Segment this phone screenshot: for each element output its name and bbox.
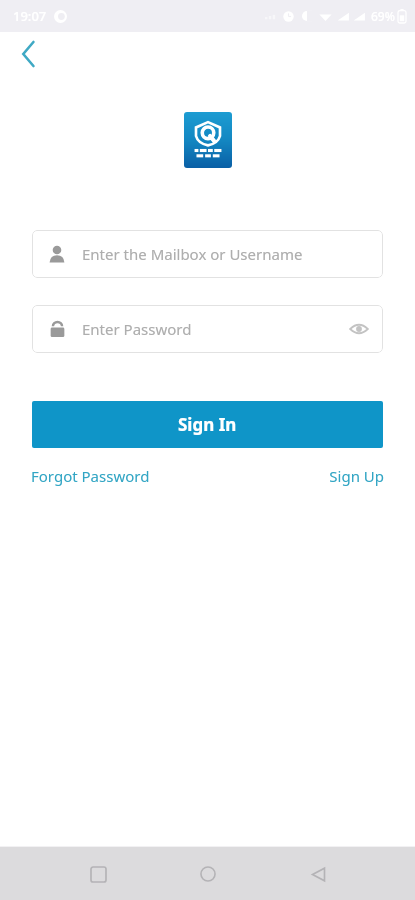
button[interactable]: Enter Password — [32, 305, 383, 353]
button[interactable]: Home — [185, 851, 231, 897]
staticText: Enter Password — [82, 319, 192, 339]
button[interactable]: Enter the Mailbox or Username — [32, 230, 383, 278]
staticText: Enter the Mailbox or Username — [82, 244, 303, 264]
staticText: 69% — [371, 8, 395, 24]
staticText: Sign Up — [329, 466, 384, 486]
button[interactable]: Sign In — [32, 401, 383, 448]
button[interactable]: Sign Up — [329, 460, 384, 492]
button[interactable]: Forgot Password — [31, 460, 150, 492]
staticText: Forgot Password — [31, 466, 150, 486]
staticText: 19:07 — [13, 7, 47, 25]
staticText: Sign In — [178, 413, 237, 436]
button[interactable]: Back — [295, 851, 341, 897]
button[interactable]: Back — [8, 34, 48, 74]
button[interactable]: Show password — [339, 309, 379, 349]
button[interactable]: Recent apps — [75, 851, 121, 897]
